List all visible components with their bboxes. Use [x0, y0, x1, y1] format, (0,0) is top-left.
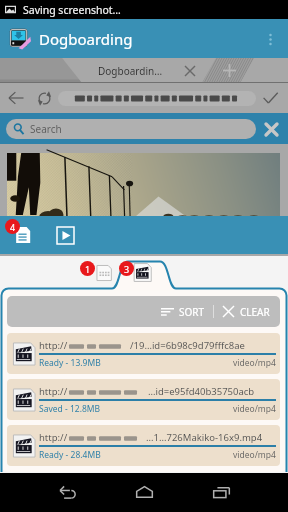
staticText: video/mp4 — [233, 357, 276, 369]
staticText: Dogboarding — [39, 29, 133, 49]
staticText: 3 — [124, 263, 130, 275]
staticText: 4 — [10, 221, 16, 233]
staticText: video/mp4 — [233, 449, 276, 461]
button[interactable]: Dogboardin… — [82, 58, 178, 83]
button[interactable]: Documents — [8, 220, 38, 250]
staticText: Saved - 12.8MB — [39, 403, 101, 415]
button[interactable]: Back — [46, 473, 88, 512]
button[interactable]: Videos — [50, 220, 80, 250]
staticText: Ready - 28.4MB — [39, 449, 101, 461]
staticText: /19…id=6b98c9d79fffc8ae — [130, 339, 245, 352]
staticText: SORT — [179, 305, 205, 319]
staticText: Dogboardin… — [98, 64, 163, 78]
staticText: video/mp4 — [233, 403, 276, 415]
button[interactable]: Pages tab, 1 item — [90, 262, 116, 288]
button[interactable]: http:// — [7, 379, 280, 420]
staticText: Search — [30, 122, 62, 136]
button[interactable]: http:// — [7, 333, 280, 374]
button[interactable]: Recent apps — [200, 473, 242, 512]
staticText: CLEAR — [240, 305, 270, 319]
staticText: Saving screenshot… — [23, 3, 121, 17]
button[interactable]: http:// — [7, 425, 280, 466]
staticText: …id=e95fd40b35750acb — [148, 385, 255, 398]
staticText: Ready - 13.9MB — [39, 357, 101, 369]
staticText: http:// — [39, 431, 68, 444]
button[interactable]: CLEAR — [214, 296, 280, 327]
button[interactable]: Go — [256, 84, 284, 112]
button[interactable] — [58, 91, 256, 106]
button[interactable]: Reload — [30, 84, 58, 112]
button[interactable]: New tab — [207, 58, 251, 83]
button[interactable]: Back — [2, 84, 30, 112]
staticText: http:// — [39, 339, 68, 352]
button[interactable]: Search — [6, 119, 256, 139]
button[interactable]: Home — [123, 473, 165, 512]
staticText: http:// — [39, 385, 68, 398]
button[interactable]: More options — [258, 27, 282, 51]
button[interactable]: Videos tab, 3 items — [128, 261, 156, 289]
button[interactable]: Close search — [256, 114, 286, 144]
button[interactable]: Close tab — [178, 58, 202, 83]
staticText: 1 — [85, 263, 91, 275]
staticText: …1…726Makiko-16x9.mp4 — [146, 431, 263, 444]
button[interactable]: SORT — [153, 296, 213, 327]
